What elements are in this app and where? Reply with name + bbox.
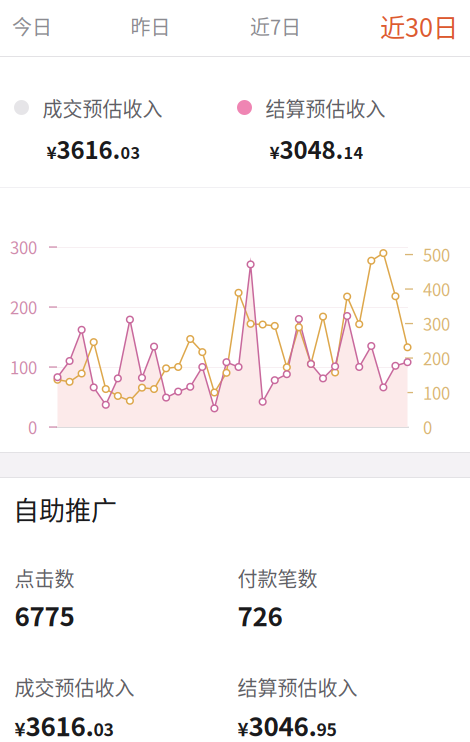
staticText: ¥ bbox=[14, 715, 25, 742]
staticText: 14 bbox=[343, 140, 363, 164]
staticText: ¥ bbox=[46, 139, 56, 164]
button[interactable]: 今日 bbox=[0, 0, 90, 54]
button[interactable]: 近7日 bbox=[217, 0, 334, 54]
staticText: 3048 bbox=[279, 131, 335, 166]
staticText: 结算预估收入 bbox=[237, 672, 357, 701]
staticText: ¥ bbox=[237, 715, 248, 742]
button[interactable]: 昨日 bbox=[92, 0, 209, 54]
button[interactable]: 近30日 bbox=[360, 0, 470, 54]
staticText: . bbox=[112, 131, 120, 166]
staticText: . bbox=[85, 706, 93, 742]
staticText: 今日 bbox=[12, 11, 52, 40]
staticText: 付款笔数 bbox=[237, 563, 317, 592]
staticText: 0 bbox=[423, 415, 432, 439]
staticText: 结算预估收入 bbox=[265, 93, 385, 122]
staticText: 点击数 bbox=[14, 563, 74, 592]
staticText: 500 bbox=[423, 242, 450, 266]
staticText: 100 bbox=[10, 355, 37, 379]
staticText: 成交预估收入 bbox=[14, 672, 134, 701]
staticText: 3616 bbox=[56, 131, 112, 166]
staticText: . bbox=[308, 706, 316, 742]
staticText: 自助推广 bbox=[13, 490, 117, 528]
staticText: 3046 bbox=[248, 706, 308, 742]
staticText: 300 bbox=[423, 311, 450, 335]
staticText: 近7日 bbox=[250, 11, 301, 40]
staticText: 0 bbox=[28, 415, 37, 439]
staticText: 400 bbox=[423, 277, 450, 301]
staticText: 昨日 bbox=[130, 11, 170, 40]
staticText: 6775 bbox=[14, 596, 74, 634]
staticText: 成交预估收入 bbox=[42, 93, 162, 122]
staticText: 726 bbox=[237, 596, 282, 634]
staticText: 300 bbox=[10, 235, 37, 259]
staticText: . bbox=[335, 131, 343, 166]
staticText: 200 bbox=[10, 295, 37, 319]
staticText: 100 bbox=[423, 380, 450, 404]
staticText: 95 bbox=[316, 716, 336, 741]
staticText: 03 bbox=[120, 140, 140, 164]
staticText: 03 bbox=[93, 716, 113, 741]
staticText: 近30日 bbox=[380, 8, 458, 44]
staticText: 200 bbox=[423, 346, 450, 370]
staticText: ¥ bbox=[269, 139, 279, 164]
staticText: 3616 bbox=[25, 706, 85, 742]
